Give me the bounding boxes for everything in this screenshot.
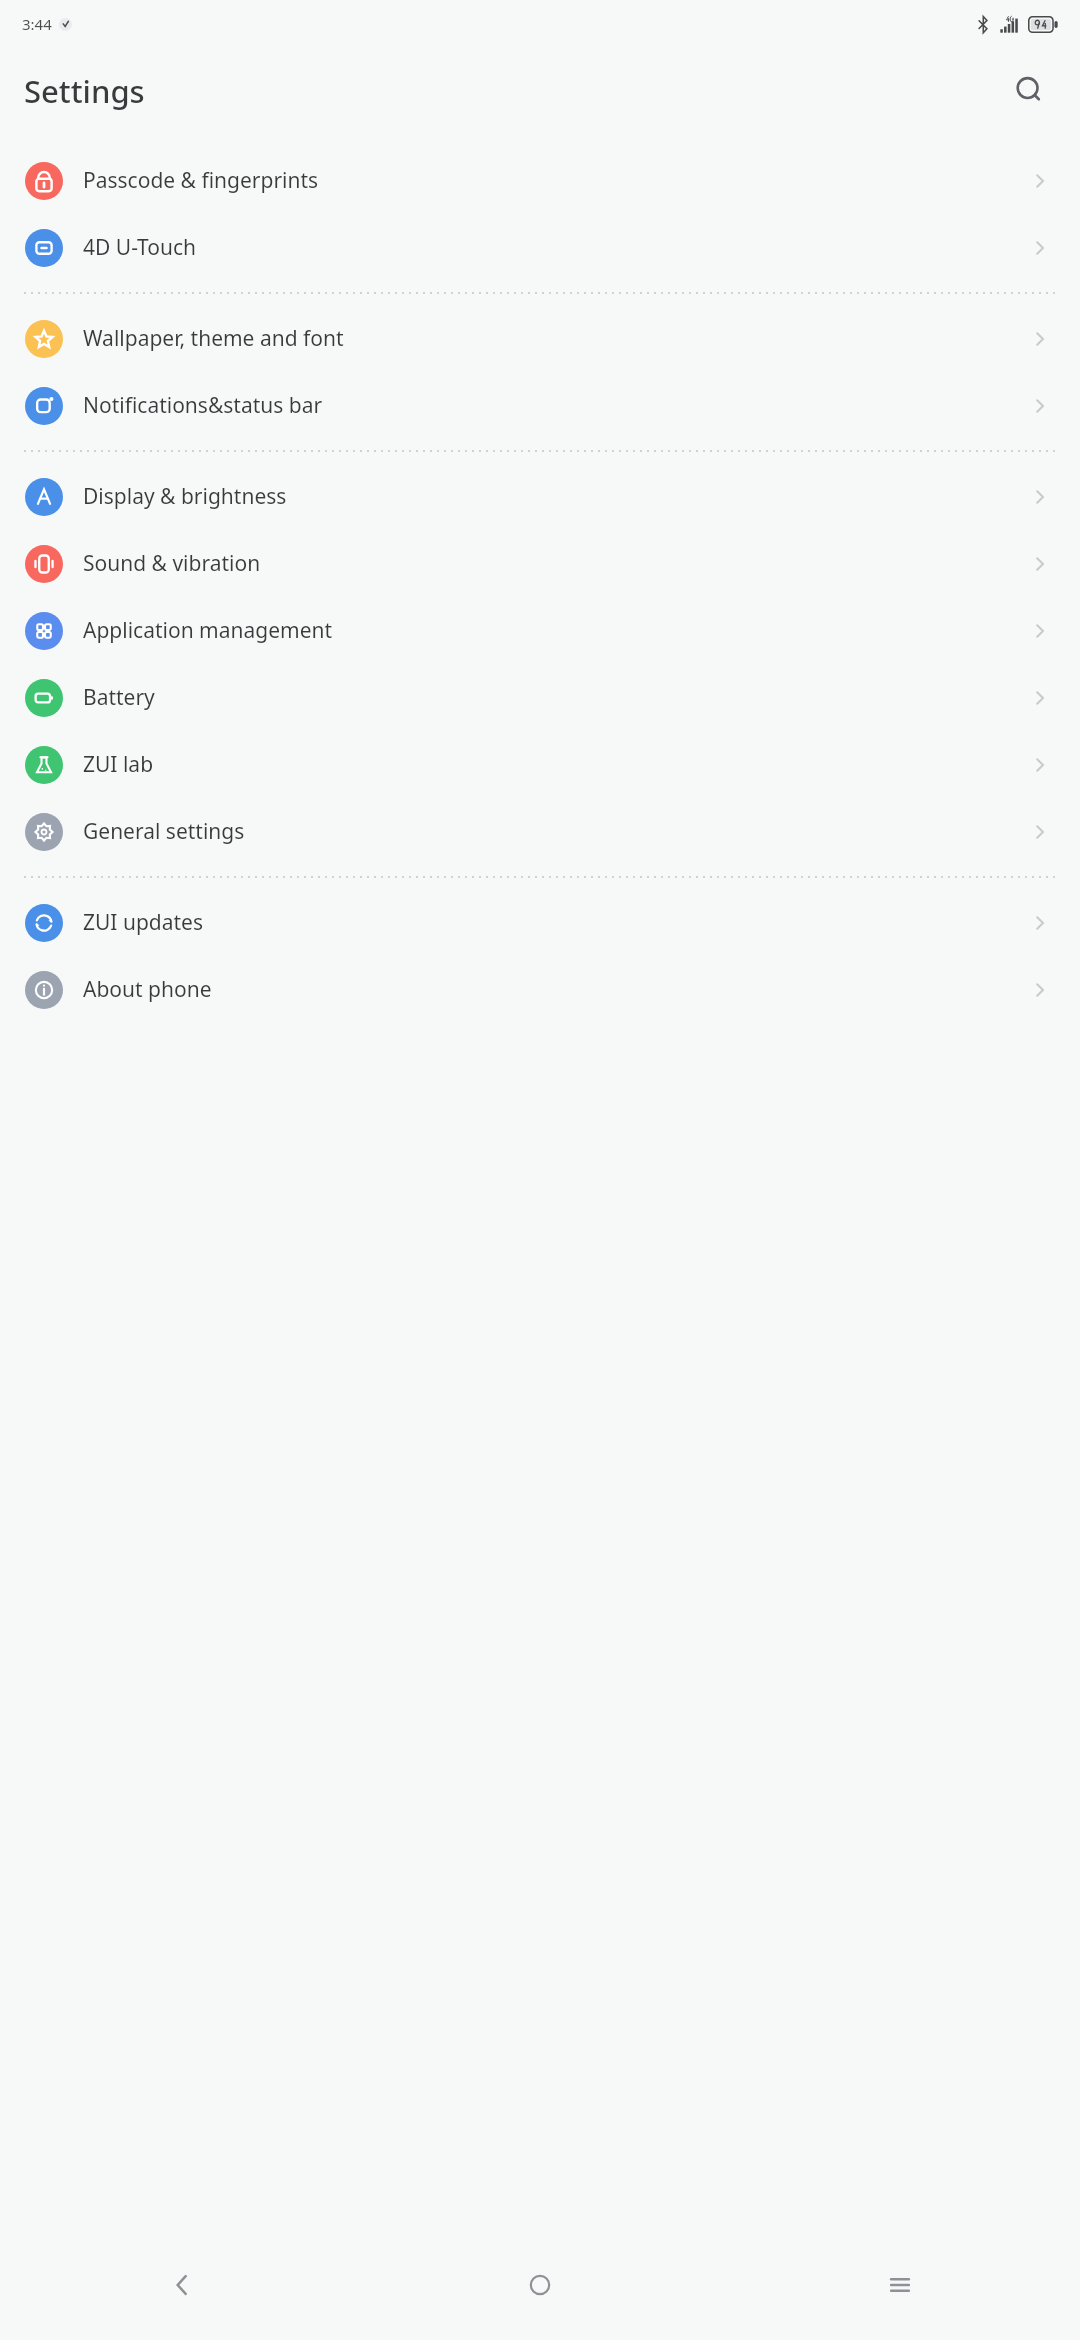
button[interactable]: Back xyxy=(0,2230,360,2340)
staticText: Wallpaper, theme and font xyxy=(83,324,344,353)
staticText: About phone xyxy=(83,975,212,1004)
staticText: Notifications&status bar xyxy=(83,391,323,420)
button[interactable]: 4D U-Touch xyxy=(0,214,1080,281)
button[interactable]: ZUI updates xyxy=(0,889,1080,956)
button[interactable]: Battery xyxy=(0,664,1080,731)
button[interactable]: Application management xyxy=(0,597,1080,664)
staticText: ZUI updates xyxy=(83,908,204,937)
staticText: 4D U-Touch xyxy=(83,233,197,262)
staticText: Application management xyxy=(83,616,333,645)
button[interactable]: Home xyxy=(360,2230,720,2340)
staticText: General settings xyxy=(83,817,245,846)
button[interactable]: Passcode & fingerprints xyxy=(0,147,1080,214)
button[interactable]: Sound & vibration xyxy=(0,530,1080,597)
staticText: Passcode & fingerprints xyxy=(83,166,319,195)
button[interactable]: Search xyxy=(1004,65,1056,117)
button[interactable]: Display & brightness xyxy=(0,463,1080,530)
button[interactable]: Wallpaper, theme and font xyxy=(0,305,1080,372)
staticText: Display & brightness xyxy=(83,482,287,511)
button[interactable]: About phone xyxy=(0,956,1080,1023)
staticText: 3:44 xyxy=(22,14,52,34)
staticText: ZUI lab xyxy=(83,750,154,779)
staticText: Battery xyxy=(83,683,155,712)
button[interactable]: Notifications&status bar xyxy=(0,372,1080,439)
button[interactable]: Recent apps xyxy=(720,2230,1080,2340)
button[interactable]: General settings xyxy=(0,798,1080,865)
staticText: Settings xyxy=(24,70,145,112)
staticText: Sound & vibration xyxy=(83,549,261,578)
button[interactable]: ZUI lab xyxy=(0,731,1080,798)
